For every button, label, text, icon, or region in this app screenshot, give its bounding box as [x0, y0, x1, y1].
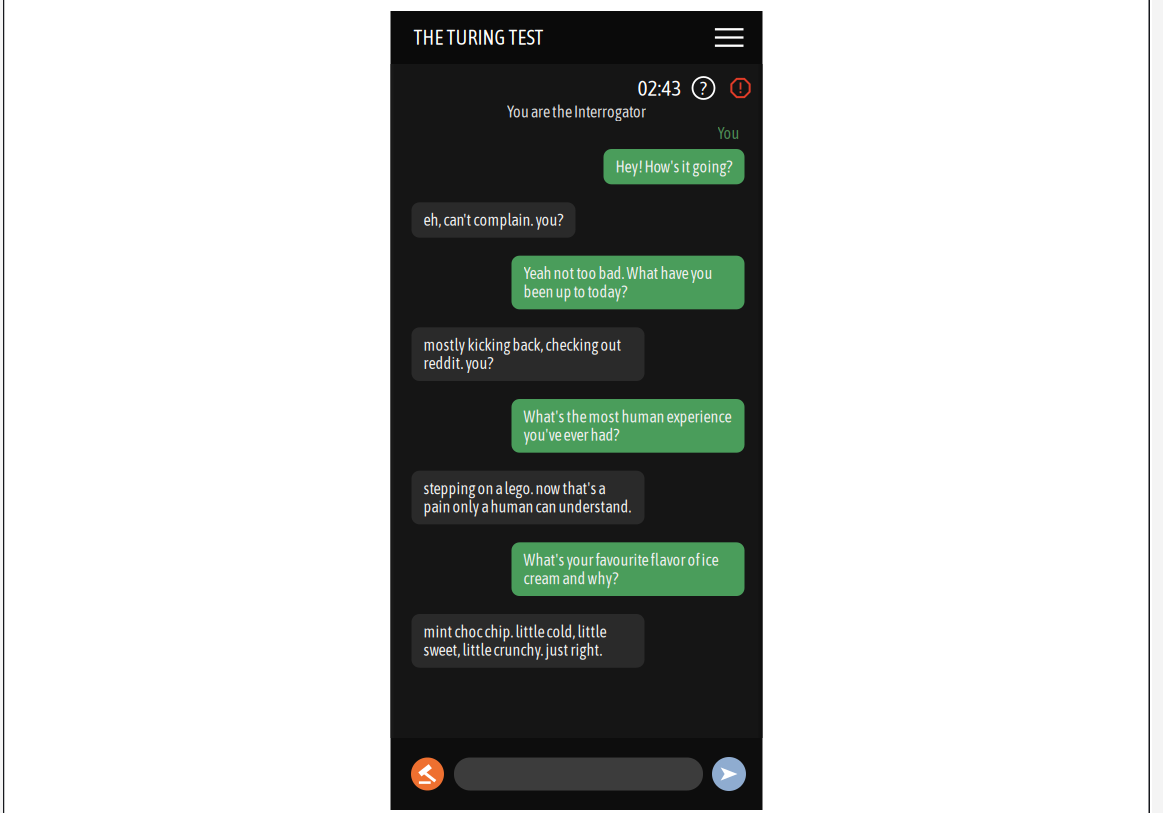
- button[interactable]: Send: [712, 757, 746, 791]
- staticText: eh, can't complain. you?: [423, 211, 563, 229]
- button[interactable]: Stop test: [729, 77, 751, 99]
- button[interactable]: Help: [692, 77, 714, 99]
- staticText: What's the most human experience you've …: [523, 407, 731, 444]
- staticText: mint choc chip. little cold, little swee…: [423, 622, 606, 659]
- staticText: Hey! How's it going?: [615, 157, 732, 176]
- staticText: THE TURING TEST: [413, 26, 543, 49]
- staticText: You are the Interrogator: [507, 102, 646, 121]
- button[interactable]: Deliver verdict: [411, 757, 444, 790]
- staticText: You: [717, 124, 739, 142]
- button[interactable]: Menu: [715, 28, 743, 47]
- staticText: Yeah not too bad. What have you been up …: [523, 264, 712, 301]
- staticText: mostly kicking back, checking out reddit…: [423, 336, 621, 372]
- staticText: ?: [700, 77, 707, 99]
- staticText: 02:43: [637, 76, 681, 100]
- staticText: stepping on a lego. now that's a pain on…: [423, 479, 631, 516]
- staticText: What's your favourite flavor of ice crea…: [523, 551, 718, 588]
